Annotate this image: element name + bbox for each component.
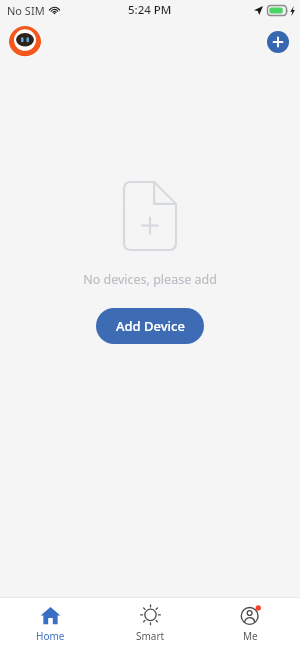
button[interactable]: Home <box>0 598 100 649</box>
staticText: No devices, please add <box>83 271 217 288</box>
button[interactable]: Profile <box>9 26 41 58</box>
staticText: 5:24 PM <box>128 2 172 18</box>
staticText: Smart <box>136 629 165 643</box>
button[interactable]: Smart <box>100 598 200 649</box>
staticText: Me <box>243 629 258 643</box>
button[interactable]: Add device <box>267 31 289 53</box>
button[interactable]: Me <box>200 598 300 649</box>
staticText: Add Device <box>116 317 185 335</box>
staticText: Home <box>36 629 65 643</box>
staticText: No SIM <box>7 3 45 18</box>
button[interactable]: Add Device <box>96 308 204 344</box>
